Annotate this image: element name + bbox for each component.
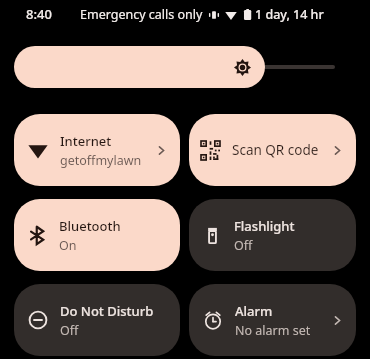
staticText: On <box>59 237 77 254</box>
staticText: 8:40 <box>26 5 52 23</box>
button[interactable]: Internet <box>14 114 180 186</box>
staticText: Flashlight <box>234 217 295 235</box>
staticText: Do Not Disturb <box>60 302 154 320</box>
button[interactable]: Brightness <box>14 46 356 88</box>
staticText: Alarm <box>235 302 273 320</box>
staticText: Scan QR code <box>232 141 329 159</box>
staticText: Internet <box>60 132 112 150</box>
staticText: Emergency calls only <box>80 6 203 23</box>
staticText: Bluetooth <box>59 217 121 235</box>
staticText: getoffmylawn <box>60 152 142 169</box>
button[interactable]: Bluetooth <box>14 199 180 271</box>
button[interactable]: Flashlight <box>189 199 356 271</box>
button[interactable]: Alarm <box>189 284 356 356</box>
staticText: No alarm set <box>235 322 311 339</box>
staticText: Off <box>60 322 79 339</box>
staticText: 1 day, 14 hr <box>255 6 324 23</box>
button[interactable]: Do Not Disturb <box>14 284 180 356</box>
button[interactable]: Scan QR code <box>189 114 356 186</box>
staticText: Off <box>234 237 253 254</box>
